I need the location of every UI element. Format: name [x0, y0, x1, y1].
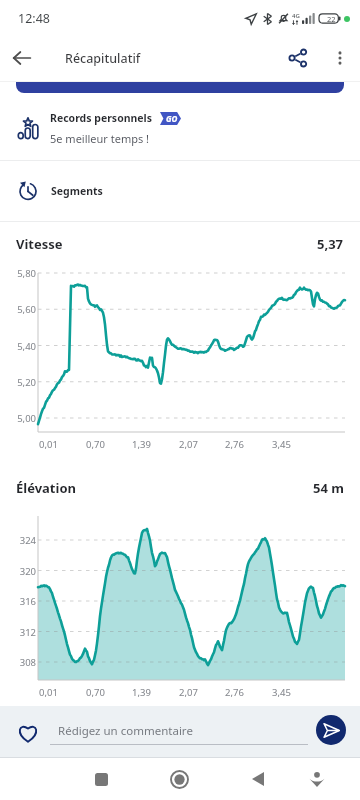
staticText: GO	[166, 113, 178, 124]
button[interactable]: Hide keyboard	[296, 758, 338, 800]
staticText: 2,76	[225, 686, 244, 699]
staticText: 308	[1, 656, 36, 669]
button[interactable]: Records personnels	[0, 97, 360, 160]
staticText: 324	[1, 534, 36, 547]
staticText: 1,39	[132, 438, 151, 451]
staticText: 1,39	[132, 686, 151, 699]
staticText: 5,80	[1, 267, 36, 280]
staticText: 5e meilleur temps !	[50, 131, 150, 146]
staticText: 2,76	[225, 438, 244, 451]
staticText: Récapitulatif	[65, 50, 141, 67]
staticText: 5,60	[1, 303, 36, 316]
staticText: 0,70	[86, 438, 105, 451]
staticText: 22	[327, 14, 336, 24]
staticText: 4G+	[292, 12, 302, 25]
button[interactable]: Back	[0, 36, 44, 80]
staticText: 2,07	[179, 438, 198, 451]
button[interactable]: Rédigez un commentaire	[50, 714, 308, 750]
staticText: Élévation	[16, 479, 76, 497]
staticText: 312	[1, 626, 36, 639]
staticText: Segments	[51, 184, 103, 198]
button[interactable]: Back	[237, 758, 279, 800]
button[interactable]: Home	[158, 758, 200, 800]
staticText: Rédigez un commentaire	[58, 723, 193, 739]
staticText: 3,45	[272, 686, 291, 699]
staticText: 316	[1, 595, 36, 608]
staticText: 320	[1, 565, 36, 578]
button[interactable]	[16, 82, 344, 93]
button[interactable]: Recent apps	[80, 758, 122, 800]
staticText: 0,01	[39, 438, 58, 451]
staticText: Records personnels	[50, 111, 153, 125]
button[interactable]: Like	[12, 717, 44, 749]
staticText: 5,40	[1, 340, 36, 353]
staticText: 5,00	[1, 412, 36, 425]
staticText: 0,01	[39, 686, 58, 699]
button[interactable]: Send	[316, 715, 346, 745]
staticText: 5,20	[1, 376, 36, 389]
staticText: 2,07	[179, 686, 198, 699]
staticText: 54 m	[313, 479, 344, 497]
staticText: 0,70	[86, 686, 105, 699]
button[interactable]: More options	[320, 38, 360, 78]
button[interactable]: Share	[276, 36, 320, 80]
staticText: 12:48	[18, 10, 50, 27]
staticText: 5,37	[317, 235, 344, 253]
staticText: Vitesse	[16, 235, 63, 253]
staticText: 3,45	[272, 438, 291, 451]
button[interactable]: Segments	[0, 161, 360, 221]
